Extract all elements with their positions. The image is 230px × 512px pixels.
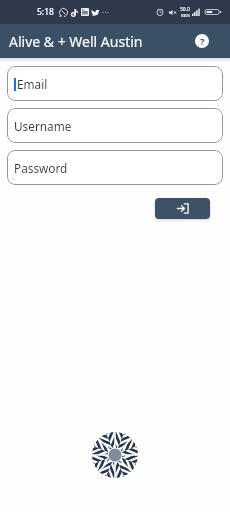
staticText: Email xyxy=(17,76,48,92)
staticText: Password xyxy=(14,160,68,176)
button[interactable]: Help xyxy=(191,30,213,52)
staticText: Alive & + Well Austin xyxy=(9,32,143,51)
button[interactable]: Password xyxy=(7,150,223,185)
button[interactable]: Email xyxy=(7,66,223,101)
staticText: 5:18 xyxy=(37,6,54,18)
button[interactable]: Sign in xyxy=(155,198,210,219)
staticText: Username xyxy=(14,118,72,134)
staticText: KB/S xyxy=(181,13,190,18)
staticText: ? xyxy=(200,35,205,48)
button[interactable]: Username xyxy=(7,108,223,143)
staticText: 50.0 xyxy=(180,6,190,13)
